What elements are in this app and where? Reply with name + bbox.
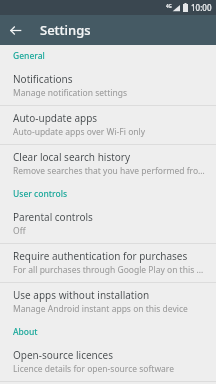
staticText: Remove searches that you have performed … bbox=[13, 165, 208, 177]
staticText: Parental controls bbox=[13, 210, 93, 224]
staticText: Use apps without installation bbox=[13, 288, 150, 302]
button[interactable]: Open-source licences bbox=[0, 343, 216, 381]
staticText: Manage notification settings bbox=[13, 87, 127, 99]
staticText: Off bbox=[13, 225, 26, 237]
staticText: For all purchases through Google Play on… bbox=[13, 264, 208, 276]
staticText: Open-source licences bbox=[13, 348, 113, 362]
staticText: Auto-update apps over Wi-Fi only bbox=[13, 126, 146, 138]
staticText: Clear local search history bbox=[13, 150, 131, 164]
button[interactable]: Auto-update apps bbox=[0, 106, 216, 144]
staticText: Settings bbox=[40, 21, 91, 39]
button[interactable]: Clear local search history bbox=[0, 145, 216, 183]
staticText: Manage Android instant apps on this devi… bbox=[13, 303, 188, 315]
staticText: User controls bbox=[13, 188, 68, 200]
button[interactable]: Notifications bbox=[0, 67, 216, 105]
button[interactable]: Use apps without installation bbox=[0, 283, 216, 321]
staticText: General bbox=[13, 50, 45, 62]
button[interactable]: Back bbox=[0, 15, 30, 45]
staticText: 10:00 bbox=[191, 2, 212, 13]
staticText: Notifications bbox=[13, 72, 73, 86]
staticText: Licence details for open-source software bbox=[13, 363, 175, 375]
staticText: Require authentication for purchases bbox=[13, 249, 188, 263]
staticText: Auto-update apps bbox=[13, 111, 98, 125]
button[interactable]: Parental controls bbox=[0, 205, 216, 243]
button[interactable]: Require authentication for purchases bbox=[0, 244, 216, 282]
staticText: About bbox=[13, 326, 38, 338]
staticText: 4G bbox=[166, 3, 172, 9]
